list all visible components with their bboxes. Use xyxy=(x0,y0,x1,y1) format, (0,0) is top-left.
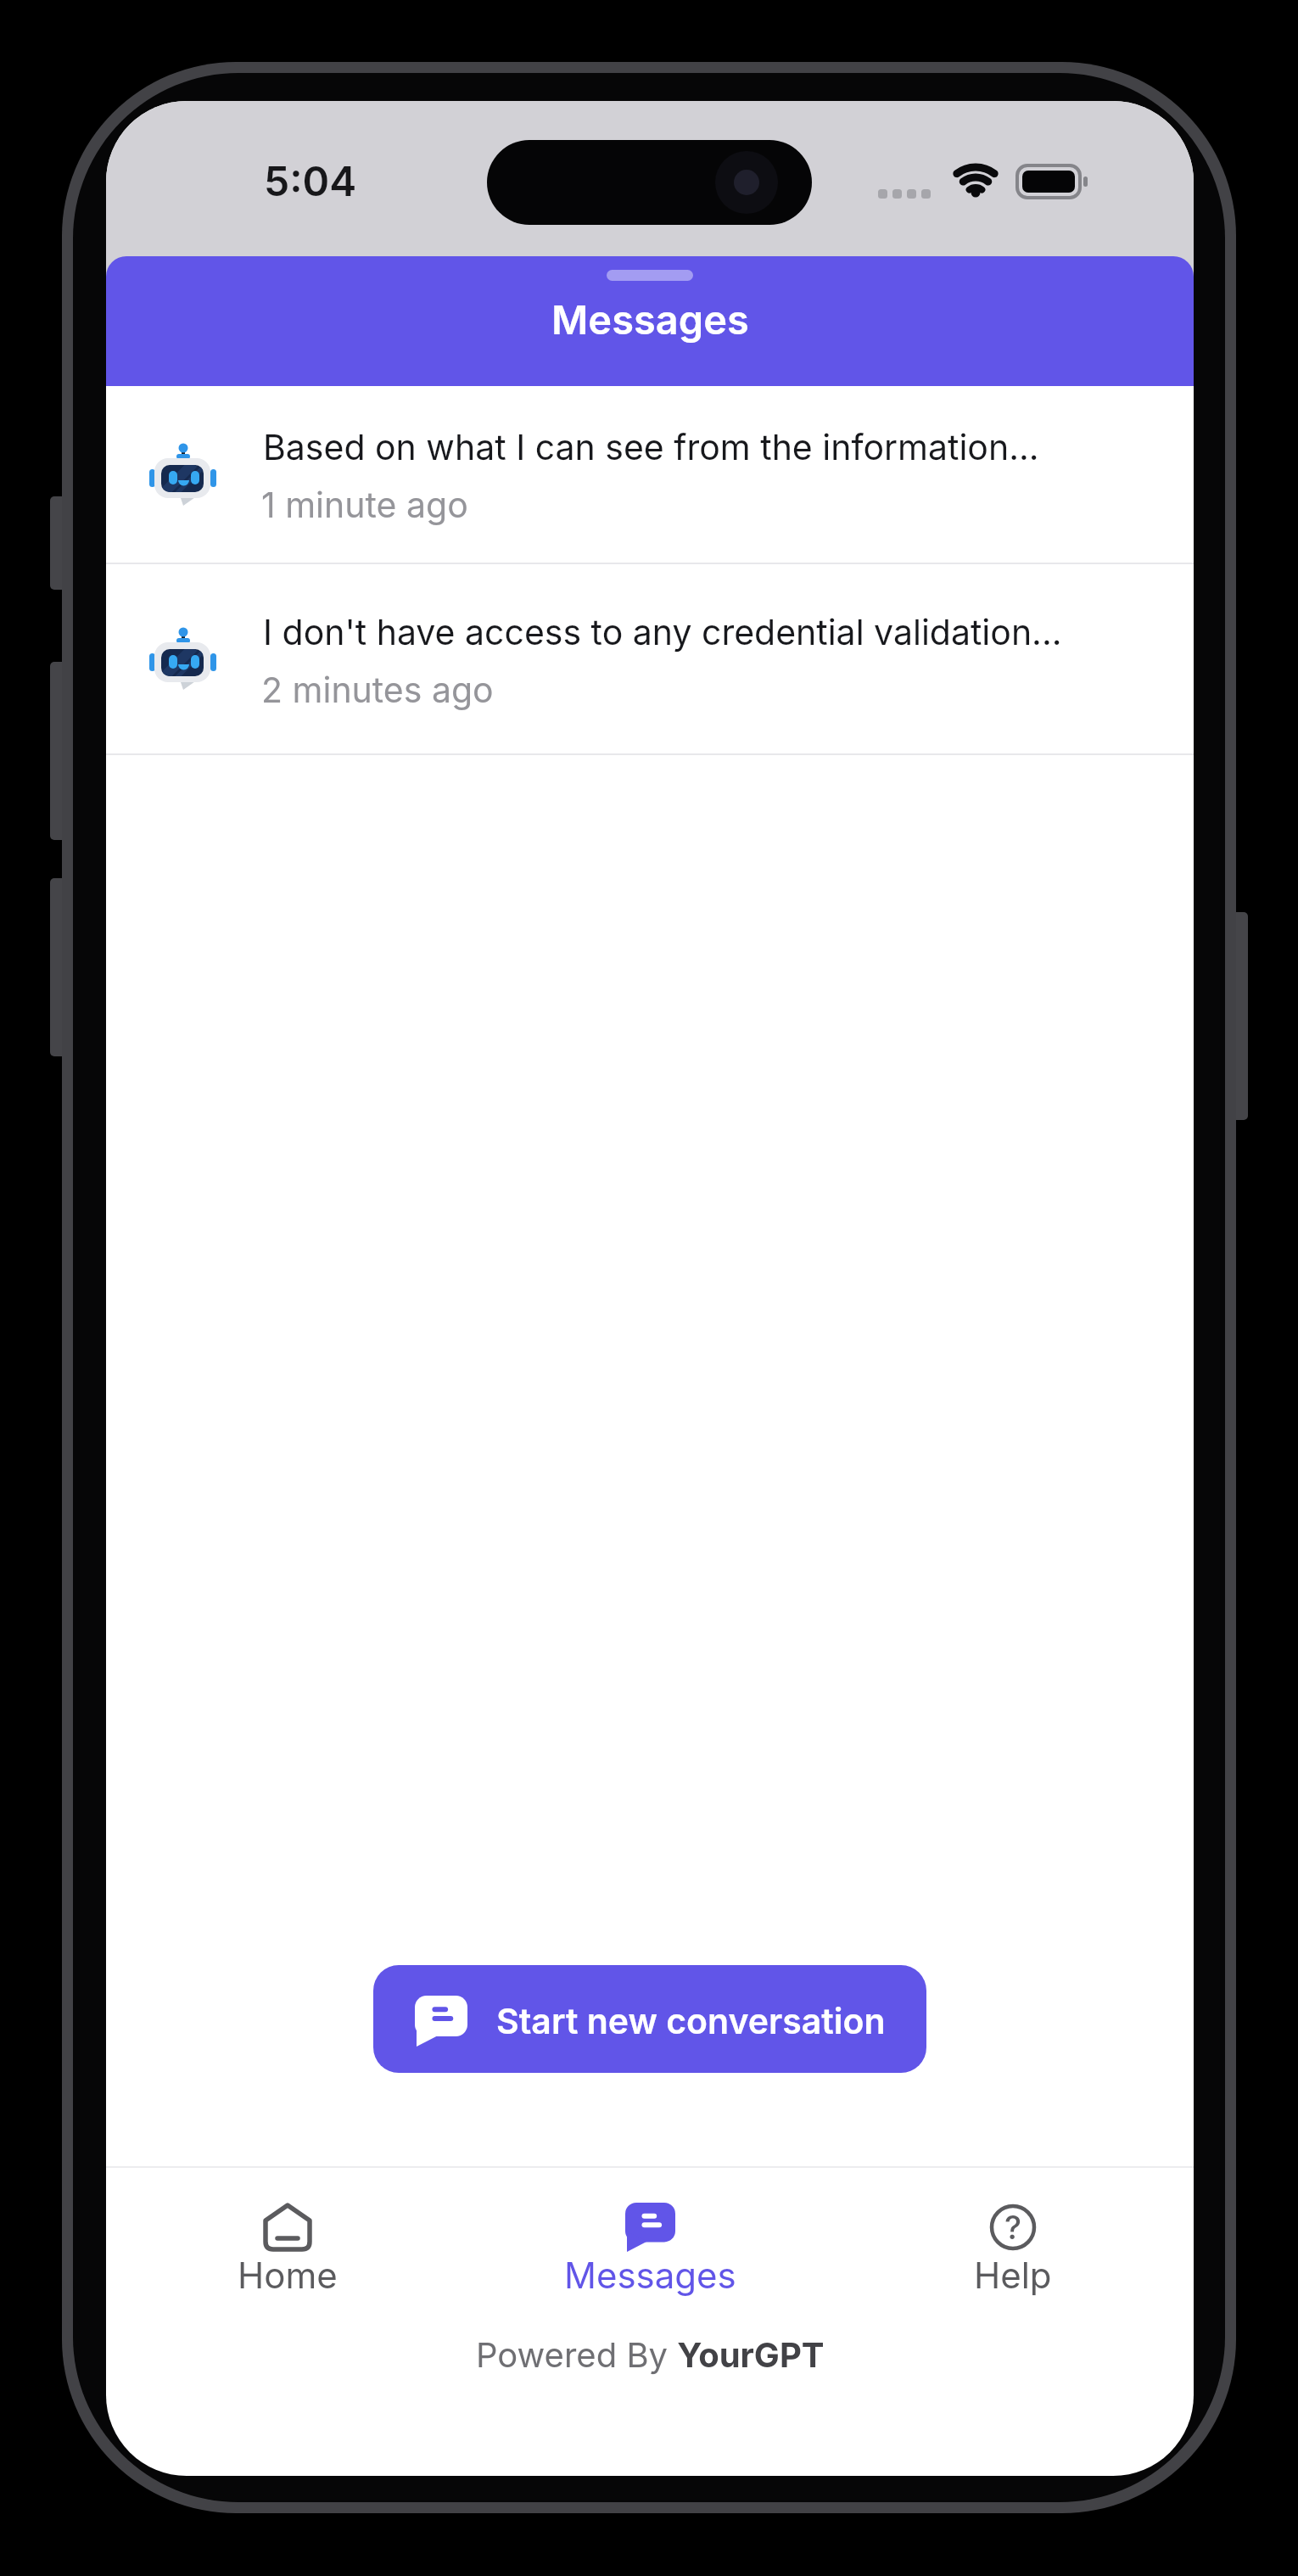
staticText: Based on what I can see from the informa… xyxy=(263,426,1039,468)
button[interactable]: Start new conversation xyxy=(373,1965,926,2073)
staticText: 1 minute ago xyxy=(261,484,468,526)
button[interactable]: Messages xyxy=(469,2203,831,2297)
staticText: Start new conversation xyxy=(496,2000,886,2042)
staticText: Messages xyxy=(551,295,749,344)
button[interactable]: I don't have access to any credential va… xyxy=(106,564,1194,755)
staticText: Powered By YourGPT xyxy=(476,2334,825,2375)
staticText: Home xyxy=(238,2254,338,2297)
staticText: 2 minutes ago xyxy=(261,669,494,711)
button[interactable]: Home xyxy=(106,2203,469,2297)
staticText: Messages xyxy=(564,2254,736,2297)
staticText: ? xyxy=(1004,2208,1022,2247)
button[interactable]: ? xyxy=(831,2203,1194,2297)
staticText: I don't have access to any credential va… xyxy=(263,611,1062,653)
staticText: Help xyxy=(974,2254,1052,2297)
button[interactable]: Based on what I can see from the informa… xyxy=(106,386,1194,564)
staticText: 5:04 xyxy=(264,156,357,205)
